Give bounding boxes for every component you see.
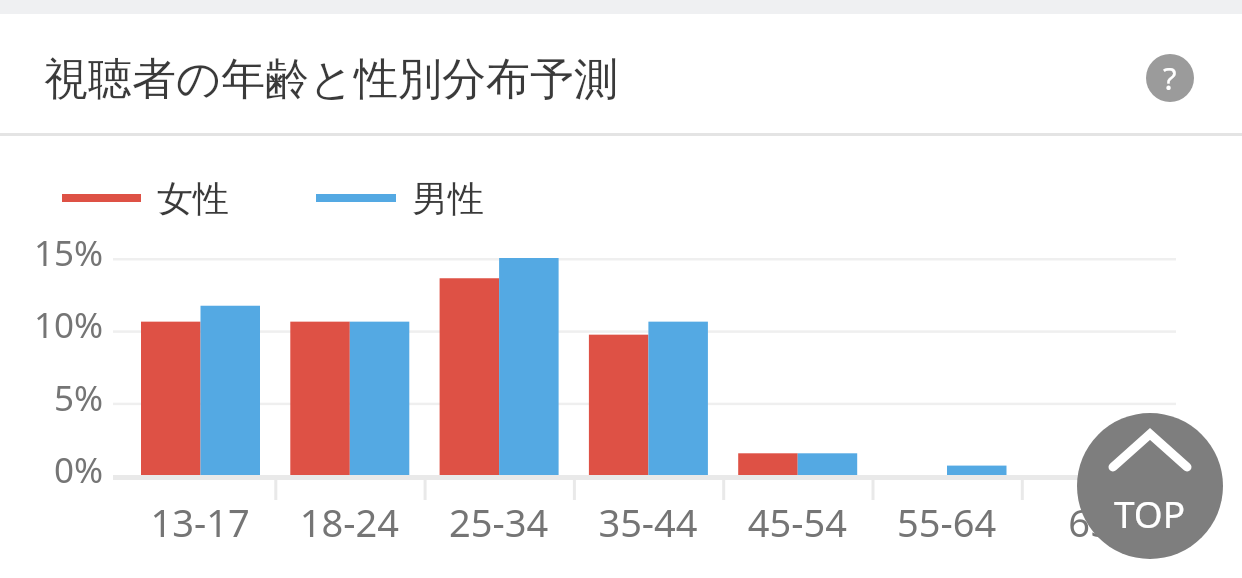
button[interactable]: Help [1146,54,1194,102]
button[interactable]: Scroll to top [1077,413,1223,559]
